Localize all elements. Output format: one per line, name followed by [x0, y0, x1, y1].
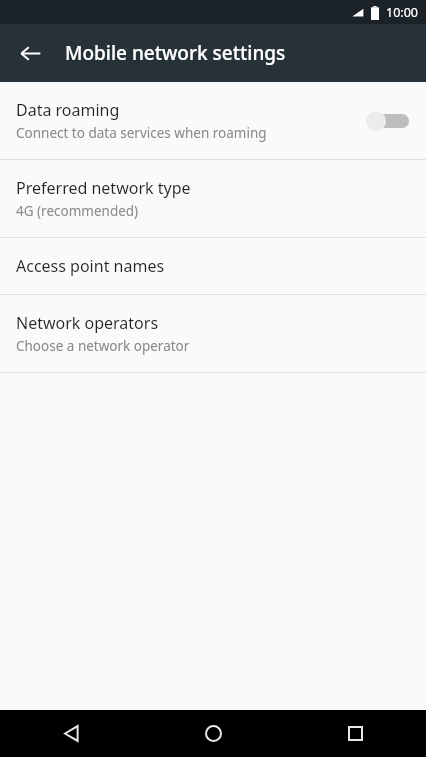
button[interactable]: Data roaming	[0, 82, 426, 159]
button[interactable]: Back	[0, 710, 142, 757]
staticText: Data roaming	[16, 99, 120, 121]
button[interactable]: Recent apps	[284, 710, 426, 757]
staticText: Choose a network operator	[16, 337, 190, 355]
staticText: 10:00	[386, 4, 418, 21]
staticText: Preferred network type	[16, 177, 191, 199]
button[interactable]: Data roaming toggle	[366, 108, 410, 134]
button[interactable]: Home	[142, 710, 284, 757]
staticText: Access point names	[16, 255, 165, 277]
staticText: Mobile network settings	[65, 40, 286, 66]
staticText: Connect to data services when roaming	[16, 124, 267, 142]
staticText: Network operators	[16, 312, 159, 334]
staticText: 4G (recommended)	[16, 202, 139, 220]
button[interactable]: Network operators	[0, 295, 426, 372]
button[interactable]: Access point names	[0, 238, 426, 294]
button[interactable]: Preferred network type	[0, 160, 426, 237]
button[interactable]: Back	[6, 29, 54, 77]
